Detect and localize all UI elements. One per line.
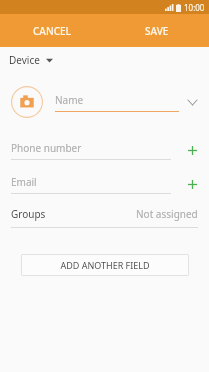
button[interactable]: Add photo xyxy=(11,86,43,118)
button[interactable]: Groups xyxy=(0,201,209,228)
staticText: ADD ANOTHER FIELD xyxy=(60,259,150,271)
button[interactable]: Email xyxy=(0,175,179,194)
button[interactable]: ADD ANOTHER FIELD xyxy=(21,254,189,276)
staticText: SAVE xyxy=(145,24,169,38)
staticText: Groups xyxy=(11,207,46,221)
button[interactable]: Expand name xyxy=(179,89,205,115)
staticText: Email xyxy=(11,175,37,189)
button[interactable]: Phone number xyxy=(0,141,179,160)
staticText: Not assigned xyxy=(136,207,198,221)
staticText: 10:00 xyxy=(184,2,205,13)
staticText: Name xyxy=(55,93,84,107)
button[interactable]: SAVE xyxy=(104,14,209,47)
button[interactable]: Add Email xyxy=(179,171,205,197)
staticText: Phone number xyxy=(11,141,82,155)
button[interactable]: Add Phone number xyxy=(179,137,205,163)
button[interactable]: CANCEL xyxy=(0,14,104,47)
button[interactable]: Device xyxy=(0,47,209,73)
staticText: CANCEL xyxy=(33,24,71,38)
staticText: Device xyxy=(9,53,40,67)
